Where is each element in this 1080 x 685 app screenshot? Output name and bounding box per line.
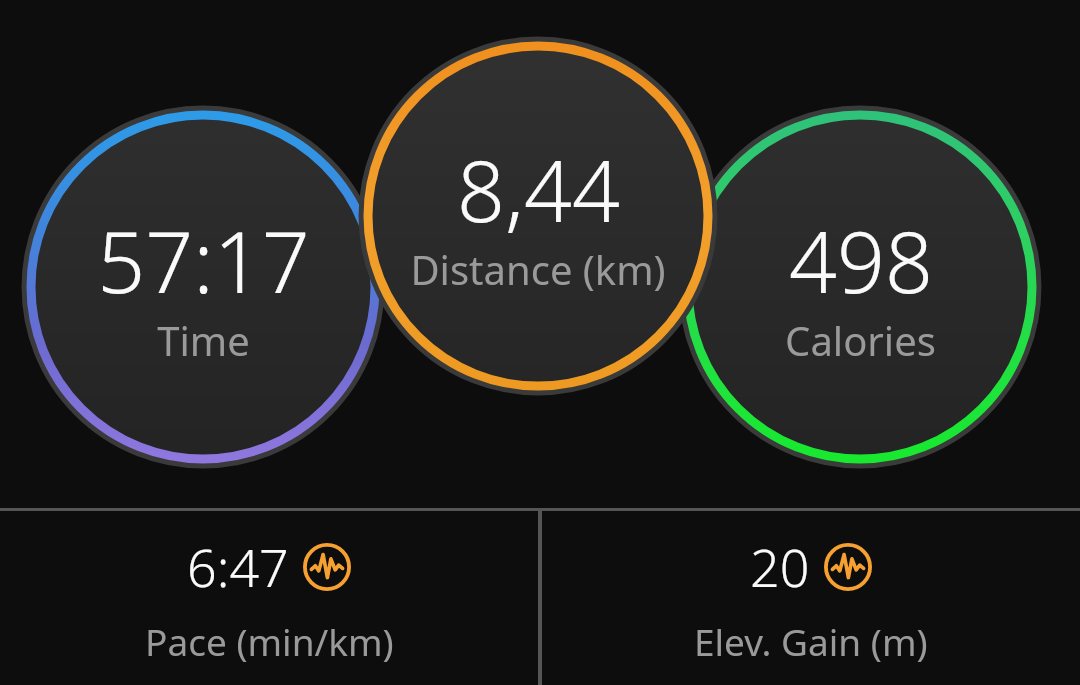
button[interactable]: 6:47 [0, 511, 538, 685]
staticText: Distance (km) [410, 242, 666, 296]
staticText: Pace (min/km) [145, 616, 394, 666]
other: Activity detail [824, 543, 872, 591]
staticText: Elev. Gain (m) [694, 616, 928, 666]
staticText: Calories [785, 313, 936, 367]
button[interactable]: 8,44 [368, 46, 708, 386]
staticText: 57:17 [97, 203, 310, 317]
staticText: 20 [750, 531, 810, 602]
button[interactable]: 57:17 [31, 115, 375, 459]
other: Activity detail [303, 543, 351, 591]
staticText: Time [157, 313, 250, 367]
staticText: 6:47 [187, 531, 289, 602]
staticText: 8,44 [457, 132, 620, 246]
button[interactable]: 20 [542, 511, 1080, 685]
staticText: 498 [789, 203, 933, 317]
button[interactable]: 498 [688, 115, 1032, 459]
